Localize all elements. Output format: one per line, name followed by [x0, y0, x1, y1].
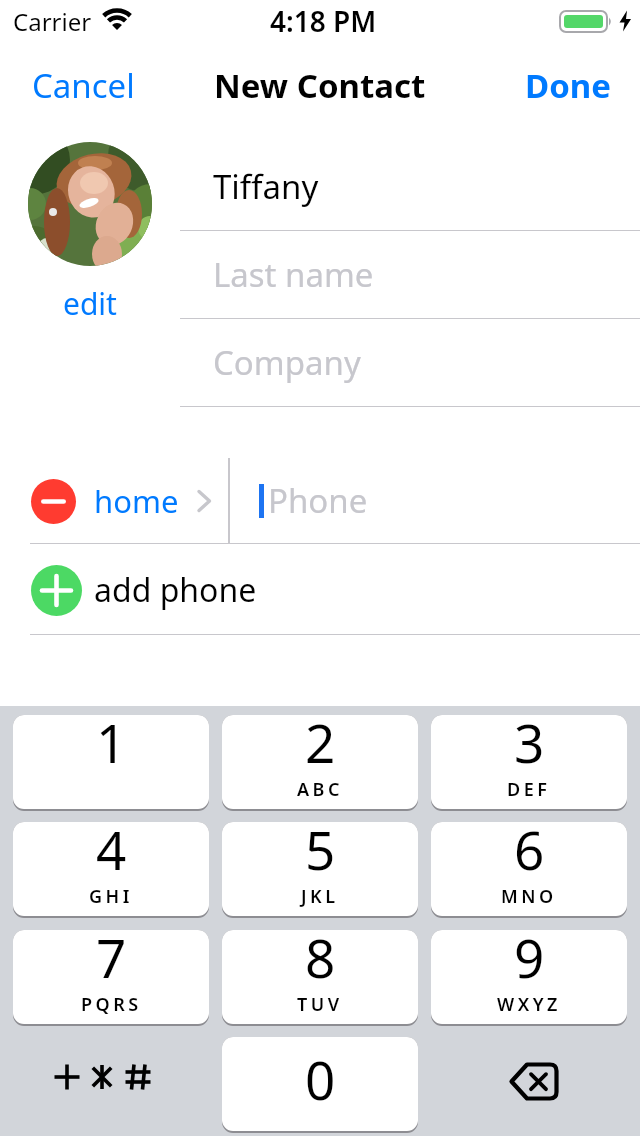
- staticText: 8: [305, 921, 336, 993]
- staticText: 0: [305, 1043, 336, 1115]
- staticText: Company: [213, 340, 361, 385]
- staticText: 2: [305, 706, 336, 778]
- staticText: 7: [96, 921, 127, 993]
- staticText: 4:18 PM: [270, 2, 377, 40]
- staticText: JKL: [301, 884, 339, 909]
- staticText: Tiffany: [213, 164, 319, 209]
- staticText: WXYZ: [497, 992, 561, 1017]
- staticText: Carrier: [13, 5, 92, 38]
- staticText: Cancel: [32, 63, 135, 108]
- staticText: GHI: [89, 884, 133, 909]
- staticText: Phone: [268, 478, 368, 523]
- staticText: TUV: [297, 992, 343, 1017]
- staticText: 9: [514, 921, 545, 993]
- staticText: add phone: [94, 568, 257, 612]
- staticText: 5: [305, 813, 336, 885]
- staticText: edit: [63, 283, 117, 324]
- staticText: 6: [514, 813, 545, 885]
- staticText: DEF: [507, 777, 551, 802]
- staticText: MNO: [501, 884, 557, 909]
- staticText: Last name: [213, 252, 374, 297]
- staticText: 1: [96, 706, 127, 778]
- staticText: ABC: [297, 777, 343, 802]
- staticText: New Contact: [214, 63, 426, 108]
- staticText: home: [94, 480, 179, 522]
- staticText: 4: [96, 813, 127, 885]
- staticText: Done: [525, 63, 611, 108]
- staticText: 3: [514, 706, 545, 778]
- staticText: PQRS: [81, 992, 142, 1017]
